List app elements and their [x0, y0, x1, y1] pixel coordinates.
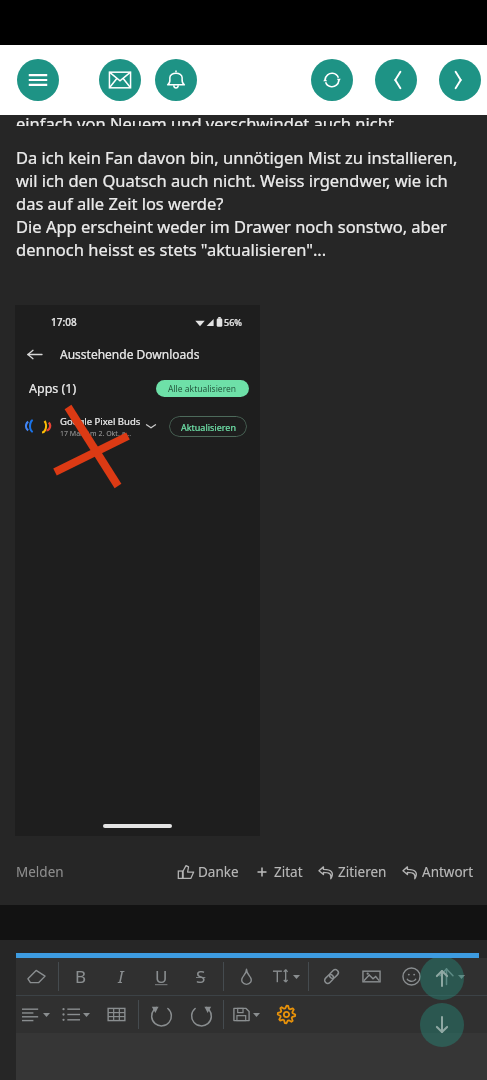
staticText: U — [155, 965, 168, 988]
staticText: Melden — [16, 863, 64, 881]
button[interactable]: Save draft — [226, 996, 266, 1033]
button[interactable]: Previous — [375, 59, 417, 101]
button[interactable]: Table — [96, 996, 136, 1033]
button[interactable]: Menu — [17, 59, 59, 101]
button[interactable]: Redo — [181, 996, 221, 1033]
button[interactable]: Refresh — [311, 59, 353, 101]
button[interactable]: Strikethrough — [181, 958, 221, 995]
staticText: 17:08 — [51, 315, 77, 329]
button[interactable]: Upload — [431, 958, 471, 995]
button[interactable]: Insert image — [351, 958, 391, 995]
staticText: Google Pixel Buds — [60, 415, 141, 428]
button[interactable]: Undo — [141, 996, 181, 1033]
button[interactable]: Settings — [266, 996, 306, 1033]
button[interactable]: Danke — [178, 863, 239, 881]
staticText: Apps (1) — [29, 380, 77, 397]
staticText: Danke — [198, 863, 239, 881]
staticText: Zitieren — [338, 863, 387, 881]
button[interactable]: Underline — [141, 958, 181, 995]
staticText: Antwort — [422, 863, 474, 881]
button[interactable]: Italic — [101, 958, 141, 995]
staticText: einfach von Neuem und verschwindet auch … — [16, 115, 399, 126]
button[interactable]: Text colour — [226, 958, 266, 995]
button[interactable]: Antwort — [402, 863, 474, 881]
staticText: 17 Mai, Am 2. Okt. a... — [60, 429, 132, 437]
button[interactable]: Font size — [266, 958, 306, 995]
button[interactable]: Zitieren — [318, 863, 387, 881]
button[interactable]: Text align — [16, 996, 56, 1033]
button[interactable]: Alle aktualisieren — [156, 380, 249, 397]
button[interactable]: Zitat — [254, 863, 303, 881]
staticText: Aktualisieren — [181, 421, 236, 433]
button[interactable]: Scroll to bottom — [420, 1003, 464, 1047]
button[interactable]: Scroll to top — [420, 956, 464, 1000]
staticText: B — [75, 965, 87, 988]
staticText: S — [196, 965, 206, 988]
staticText: Da ich kein Fan davon bin, unnötigen Mis… — [16, 146, 471, 215]
staticText: Ausstehende Downloads — [60, 346, 200, 362]
button[interactable]: Messages — [99, 59, 141, 101]
button[interactable]: Aktualisieren — [169, 416, 247, 437]
staticText: Die App erscheint weder im Drawer noch s… — [16, 215, 471, 261]
button[interactable]: Notifications — [155, 59, 197, 101]
button[interactable]: Emoji — [391, 958, 431, 995]
button[interactable]: Bold — [61, 958, 101, 995]
staticText: 56% — [224, 316, 242, 328]
staticText: Alle aktualisieren — [168, 383, 237, 395]
button[interactable]: List — [56, 996, 96, 1033]
button[interactable]: Melden — [16, 863, 64, 881]
staticText: I — [118, 965, 124, 988]
button[interactable]: Next — [439, 59, 481, 101]
button[interactable]: Erase — [16, 958, 56, 995]
button[interactable]: Insert link — [311, 958, 351, 995]
staticText: Zitat — [274, 863, 303, 881]
